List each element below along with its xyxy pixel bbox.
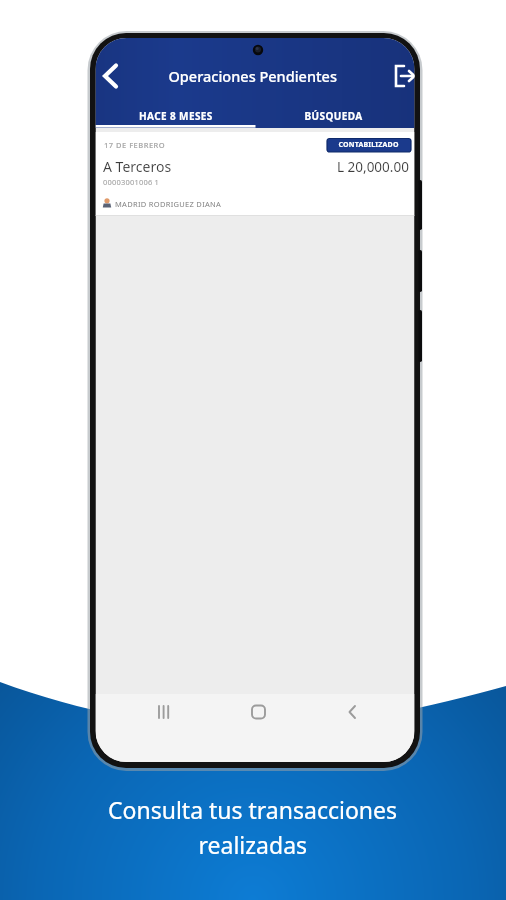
button[interactable]: Consulta tus transacciones realizadas (0, 0, 506, 900)
